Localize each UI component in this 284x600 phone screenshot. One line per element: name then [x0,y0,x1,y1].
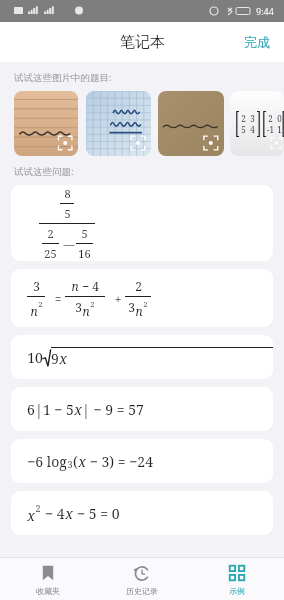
staticText: 2 [266,113,275,124]
staticText: 16 [78,246,91,261]
button[interactable]: 6 [11,387,273,431]
staticText: 9:44 [256,5,274,17]
staticText: 2 [90,299,95,309]
staticText: 6 [27,400,35,419]
staticText: x [74,400,82,419]
staticText: -1 [266,124,275,135]
staticText: 9 [51,349,59,368]
staticText: + [105,291,125,307]
staticText: x [65,504,73,523]
staticText: n [71,278,79,294]
staticText: 5 [64,206,71,221]
staticText: 8 [64,186,71,201]
staticText: 笔记本 [120,33,165,52]
staticText: x [78,452,86,471]
staticText: ( [73,452,78,471]
staticText: n [30,303,38,319]
staticText: 试试这些图片中的题目: [14,71,112,84]
staticText: 2 [143,299,148,309]
button[interactable]: −6 log [11,439,273,483]
button[interactable] [158,91,224,156]
staticText: 3 [128,299,135,315]
staticText: − 4 [79,278,99,294]
button[interactable] [86,91,151,156]
button[interactable]: 示例 [190,558,284,600]
staticText: 历史记录 [126,586,158,596]
staticText: n [82,303,90,319]
staticText: 示例 [229,586,245,596]
button[interactable]: 收藏夹 [1,558,95,600]
button[interactable]: 8 [11,185,273,261]
staticText: — [59,236,76,251]
staticText: 0 [275,113,284,124]
staticText: x [59,349,67,368]
staticText: |1 − 5 [35,400,74,419]
staticText: − 5 = 0 [73,504,120,523]
button[interactable]: x [11,491,273,535]
staticText: − 3) = −24 [86,452,153,471]
staticText: 5 [239,124,248,135]
button[interactable]: 完成 [230,22,284,62]
staticText: 收藏夹 [36,586,60,596]
staticText: 4 [248,124,257,135]
staticText: n [135,303,143,319]
staticText: 25 [44,246,57,261]
staticText: 2 [239,113,248,124]
staticText: 3 [248,113,257,124]
staticText: −6 log [27,452,67,471]
button[interactable]: 历史记录 [95,558,189,600]
staticText: 5 [81,226,88,241]
staticText: 2 [47,226,54,241]
staticText: 3 [75,299,82,315]
staticText: 3 [33,278,40,294]
staticText: 1 [275,124,284,135]
staticText: 3 [67,458,73,470]
staticText: 2 [38,299,43,309]
staticText: − 4 [41,504,65,523]
staticText: 10 [27,348,43,367]
staticText: 2 [135,278,142,294]
staticText: = [45,291,65,307]
staticText: 2 [35,502,41,514]
staticText: 试试这些问题: [14,165,74,178]
staticText: 完成 [244,34,270,50]
button[interactable] [14,91,78,156]
button[interactable]: 10 [11,335,273,379]
staticText: | − 9 = 57 [82,400,144,419]
button[interactable]: 2 [230,91,284,156]
staticText: x [27,506,35,525]
button[interactable]: 3 [11,269,273,327]
